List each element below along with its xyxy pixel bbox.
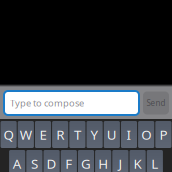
staticText: O <box>141 126 151 143</box>
button[interactable]: R <box>52 121 68 148</box>
button[interactable]: Send <box>143 91 169 114</box>
button[interactable]: U <box>104 121 120 148</box>
button[interactable]: Q <box>0 121 17 148</box>
button[interactable]: K <box>129 150 146 172</box>
staticText: T <box>74 126 81 143</box>
staticText: Y <box>91 126 99 143</box>
button[interactable]: S <box>26 150 42 172</box>
staticText: Type to compose <box>10 97 84 109</box>
staticText: D <box>47 155 57 172</box>
staticText: F <box>65 155 72 172</box>
staticText: I <box>126 126 131 143</box>
button[interactable]: P <box>155 121 171 148</box>
button[interactable]: A <box>9 150 25 172</box>
button[interactable]: F <box>61 150 77 172</box>
staticText: P <box>159 126 167 143</box>
button[interactable]: W <box>18 121 34 148</box>
staticText: Q <box>4 126 14 143</box>
staticText: U <box>107 126 117 143</box>
staticText: E <box>39 126 46 143</box>
button[interactable]: G <box>78 150 94 172</box>
staticText: S <box>31 155 38 172</box>
staticText: K <box>134 155 142 172</box>
button[interactable]: L <box>147 150 163 172</box>
staticText: L <box>151 155 158 172</box>
staticText: Send <box>146 98 165 108</box>
button[interactable]: E <box>35 121 51 148</box>
staticText: G <box>81 155 91 172</box>
staticText: H <box>98 155 108 172</box>
staticText: J <box>118 155 122 172</box>
button[interactable]: T <box>69 121 85 148</box>
button[interactable]: O <box>138 121 154 148</box>
staticText: A <box>13 155 22 172</box>
button[interactable]: D <box>43 150 60 172</box>
staticText: W <box>20 126 32 143</box>
staticText: R <box>56 126 64 143</box>
button[interactable]: I <box>121 121 137 148</box>
button[interactable]: Y <box>86 121 103 148</box>
button[interactable]: Type to compose <box>4 91 139 115</box>
button[interactable]: J <box>112 150 128 172</box>
button[interactable]: H <box>95 150 111 172</box>
